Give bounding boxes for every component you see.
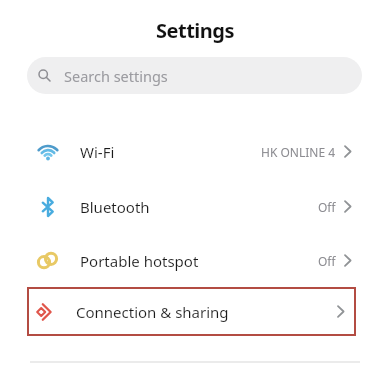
staticText: Wi-Fi <box>80 142 115 162</box>
staticText: Off <box>318 253 336 269</box>
button[interactable]: Bluetooth <box>0 179 390 234</box>
staticText: Settings <box>156 17 234 44</box>
button[interactable]: Wi-Fi <box>0 124 390 179</box>
button[interactable]: Search settings <box>27 57 362 94</box>
staticText: HK ONLINE 4 <box>261 144 336 160</box>
staticText: Off <box>318 199 336 215</box>
staticText: Search settings <box>64 66 168 86</box>
staticText: Connection & sharing <box>76 302 229 322</box>
staticText: Portable hotspot <box>80 251 199 271</box>
staticText: Bluetooth <box>80 197 150 217</box>
button[interactable]: Connection & sharing <box>27 287 356 336</box>
button[interactable]: Portable hotspot <box>0 234 390 287</box>
